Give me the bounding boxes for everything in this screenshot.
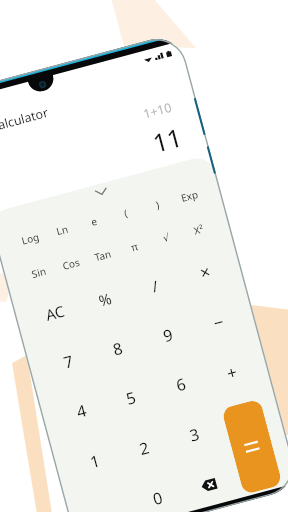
button[interactable]: AC	[24, 281, 86, 343]
button[interactable]	[221, 399, 283, 495]
button[interactable]: Log	[9, 217, 50, 259]
staticText: 5	[123, 386, 139, 410]
button[interactable]: )	[137, 183, 178, 225]
button[interactable]: 0	[126, 466, 190, 512]
staticText: 7	[61, 350, 76, 374]
button[interactable]: −	[187, 290, 250, 353]
button[interactable]: Ln	[41, 208, 82, 251]
other: Collapse	[95, 188, 107, 196]
staticText: π	[129, 239, 140, 254]
staticText: 2	[137, 436, 152, 460]
staticText: Tan	[93, 246, 113, 264]
button[interactable]: +	[200, 340, 264, 404]
staticText: Cos	[61, 255, 82, 273]
button[interactable]: (	[105, 191, 146, 234]
other: Backspace	[200, 478, 217, 492]
staticText: ×	[197, 259, 213, 284]
staticText: 4	[74, 399, 90, 423]
staticText: 11	[149, 120, 185, 160]
staticText: 6	[174, 372, 189, 396]
staticText: X²	[192, 221, 206, 238]
button[interactable]: Cos	[50, 242, 91, 284]
button[interactable]: Backspace	[176, 453, 240, 512]
staticText: 1	[88, 449, 103, 473]
staticText: (	[122, 206, 129, 220]
button[interactable]: 7	[37, 330, 99, 393]
staticText: 0	[150, 486, 166, 510]
staticText: 3	[187, 423, 203, 446]
button[interactable]: ×	[173, 240, 237, 303]
button[interactable]: 4	[50, 379, 113, 443]
staticText: Log	[20, 229, 41, 248]
button[interactable]: Exp	[169, 174, 210, 216]
staticText: AC	[43, 300, 67, 325]
button[interactable]: √	[146, 217, 187, 259]
button[interactable]: 9	[136, 303, 200, 366]
staticText: e	[89, 214, 99, 229]
staticText: Exp	[179, 187, 199, 205]
staticText: %	[96, 288, 114, 310]
button[interactable]: 5	[99, 366, 163, 430]
staticText: 1+10	[141, 99, 173, 123]
staticText: √	[162, 231, 171, 245]
button[interactable]: 6	[149, 352, 213, 416]
button[interactable]: e	[73, 200, 114, 242]
button[interactable]: %	[73, 267, 136, 330]
button[interactable]: X²	[178, 208, 219, 250]
staticText: +	[224, 360, 240, 385]
button[interactable]: 8	[86, 317, 149, 379]
staticText: )	[154, 197, 161, 212]
staticText: Sin	[30, 264, 48, 281]
staticText: Ln	[55, 222, 70, 238]
staticText: 9	[160, 323, 176, 347]
button[interactable]: 1	[63, 430, 126, 493]
button[interactable]: π	[114, 225, 155, 267]
staticText: /	[149, 275, 160, 296]
button[interactable]: 2	[113, 416, 176, 480]
staticText: −	[211, 310, 226, 334]
staticText: 8	[110, 337, 126, 360]
button[interactable]: Sin	[18, 251, 59, 293]
staticText: Calculator	[0, 104, 51, 136]
button[interactable]: /	[123, 254, 186, 317]
button[interactable]: Tan	[82, 234, 123, 276]
button[interactable]: 3	[163, 403, 227, 466]
